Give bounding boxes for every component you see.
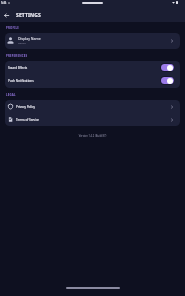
button[interactable]: Display Name [5,33,180,49]
staticText: Privacy Policy [16,105,170,109]
staticText: Display Name [18,36,41,41]
staticText: LEGAL [6,93,16,97]
staticText: Push Notifications [8,79,160,83]
staticText: Warrior [18,42,26,45]
staticText: Terms of Service [16,118,170,122]
button[interactable]: Sound Effects [5,61,180,74]
staticText: Sound Effects [8,66,160,70]
button[interactable]: Privacy Policy [5,100,180,113]
staticText: 5:46 [1,1,7,5]
button[interactable]: Terms of Service [5,113,180,126]
button[interactable]: Push Notifications [5,74,180,87]
staticText: PREFERENCES [6,54,28,58]
staticText: SETTINGS [16,12,42,19]
staticText: Version 1.4.2 (Build 87) [0,134,185,138]
button[interactable]: Back [2,11,11,20]
staticText: PROFILE [6,26,20,30]
